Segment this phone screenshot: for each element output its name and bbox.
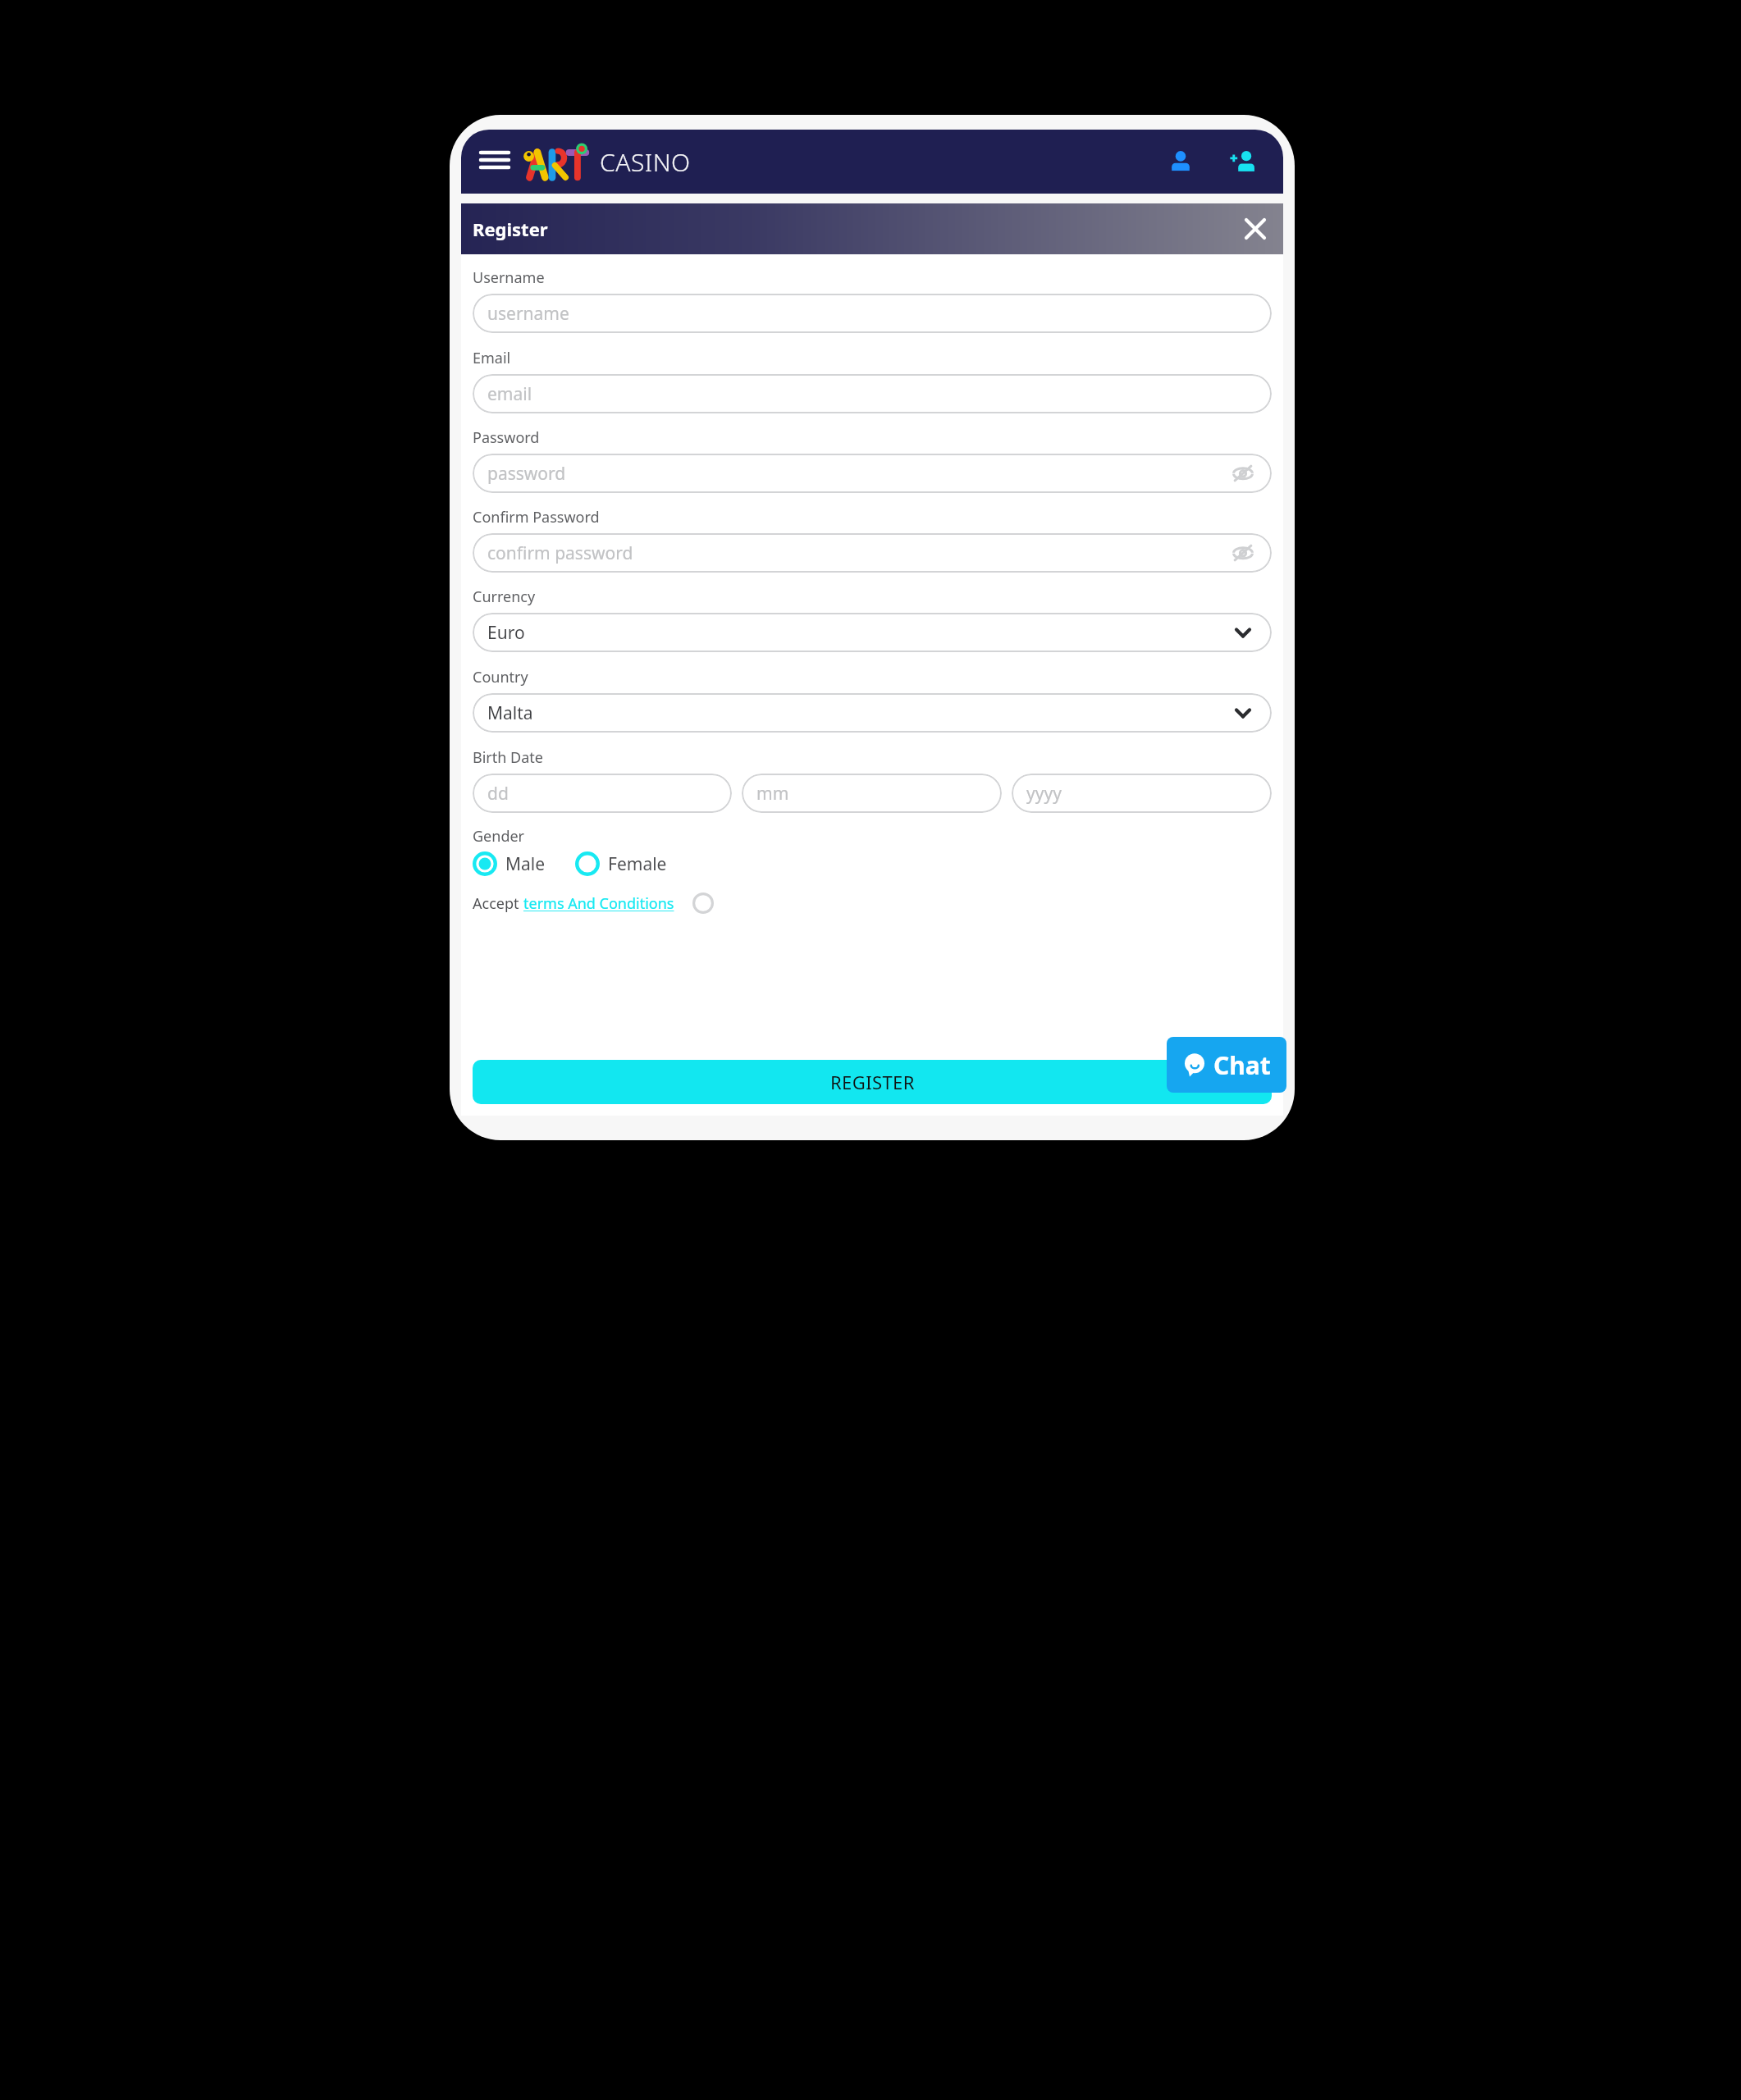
button[interactable]: terms And Conditions [523,893,674,914]
button[interactable]: Euro [473,613,1272,652]
button[interactable]: Menu [476,143,514,180]
staticText: username [487,302,569,326]
button[interactable]: Toggle password visibility [1229,539,1257,567]
staticText: Register [473,217,548,241]
staticText: Euro [487,621,525,645]
button[interactable]: Accept terms checkbox [689,889,717,917]
staticText: CASINO [600,145,691,179]
staticText: Username [473,267,545,288]
staticText: mm [756,782,789,806]
button[interactable]: Close [1239,212,1272,245]
staticText: Confirm Password [473,507,600,527]
button[interactable]: Login [1158,139,1203,184]
button[interactable]: confirm password [473,533,1272,573]
button[interactable]: CASINO [527,143,691,180]
staticText: Country [473,667,528,687]
button[interactable]: mm [742,774,1002,813]
staticText: Female [608,852,667,876]
button[interactable]: Toggle password visibility [1229,459,1257,487]
staticText: Email [473,348,511,368]
button[interactable]: username [473,294,1272,333]
staticText: Password [473,427,540,448]
staticText: password [487,462,566,486]
staticText: confirm password [487,541,633,565]
other: Open dropdown [1229,699,1257,727]
staticText: Birth Date [473,747,543,768]
button[interactable]: yyyy [1012,774,1272,813]
staticText: email [487,382,532,406]
button[interactable]: Malta [473,693,1272,733]
staticText: Chat [1213,1048,1271,1082]
button[interactable]: Register [1221,139,1265,184]
staticText: Male [505,852,546,876]
staticText: Malta [487,701,533,725]
staticText: Accept [473,893,523,914]
staticText: Currency [473,587,536,607]
button[interactable]: email [473,374,1272,413]
staticText: REGISTER [830,1070,915,1094]
button[interactable]: Male [473,851,546,876]
other: Open dropdown [1229,619,1257,646]
button[interactable]: Female [575,851,667,876]
staticText: dd [487,782,509,806]
button[interactable]: password [473,454,1272,493]
button[interactable]: REGISTER [473,1060,1272,1104]
staticText: yyyy [1026,782,1062,806]
button[interactable]: dd [473,774,732,813]
staticText: Gender [473,826,525,847]
button[interactable]: Chat [1167,1037,1286,1093]
